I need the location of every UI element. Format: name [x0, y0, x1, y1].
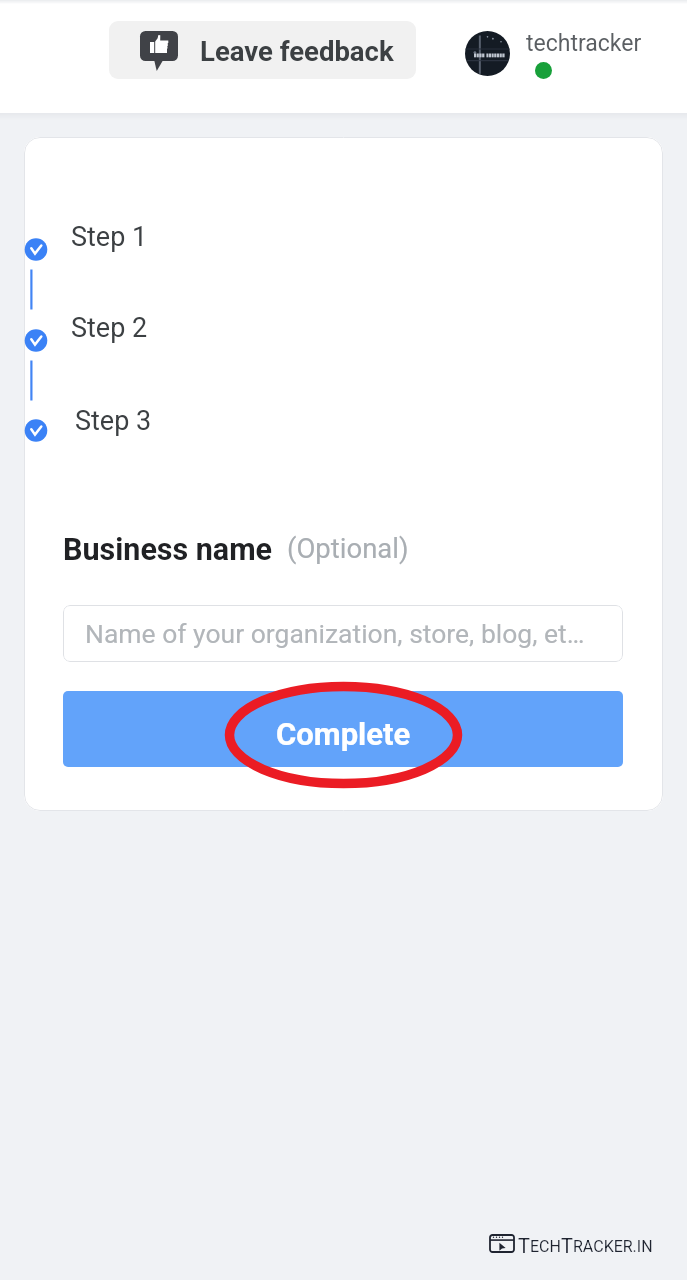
button[interactable]: Name of your organization, store, blog, …	[63, 605, 623, 662]
staticText: T	[561, 1234, 573, 1257]
button[interactable]: Account	[465, 31, 510, 76]
staticText: ECH	[530, 1237, 561, 1256]
staticText: T	[518, 1234, 530, 1257]
staticText: Step 3	[75, 405, 152, 437]
button[interactable]: Complete	[63, 691, 623, 767]
staticText: Step 2	[71, 312, 148, 344]
staticText: techtracker	[526, 30, 642, 57]
button[interactable]: Step 2	[24, 314, 663, 368]
staticText: Name of your organization, store, blog, …	[85, 618, 585, 649]
staticText: Business name	[63, 532, 273, 568]
button[interactable]: Leave feedback	[109, 21, 416, 79]
staticText: (Optional)	[287, 532, 409, 564]
staticText: RACKER.IN	[573, 1237, 653, 1256]
button[interactable]: Step 1	[24, 223, 663, 277]
staticText: Leave feedback	[200, 35, 394, 67]
staticText: Step 1	[71, 221, 148, 253]
staticText: Complete	[276, 716, 411, 752]
button[interactable]: Step 3	[24, 404, 663, 458]
